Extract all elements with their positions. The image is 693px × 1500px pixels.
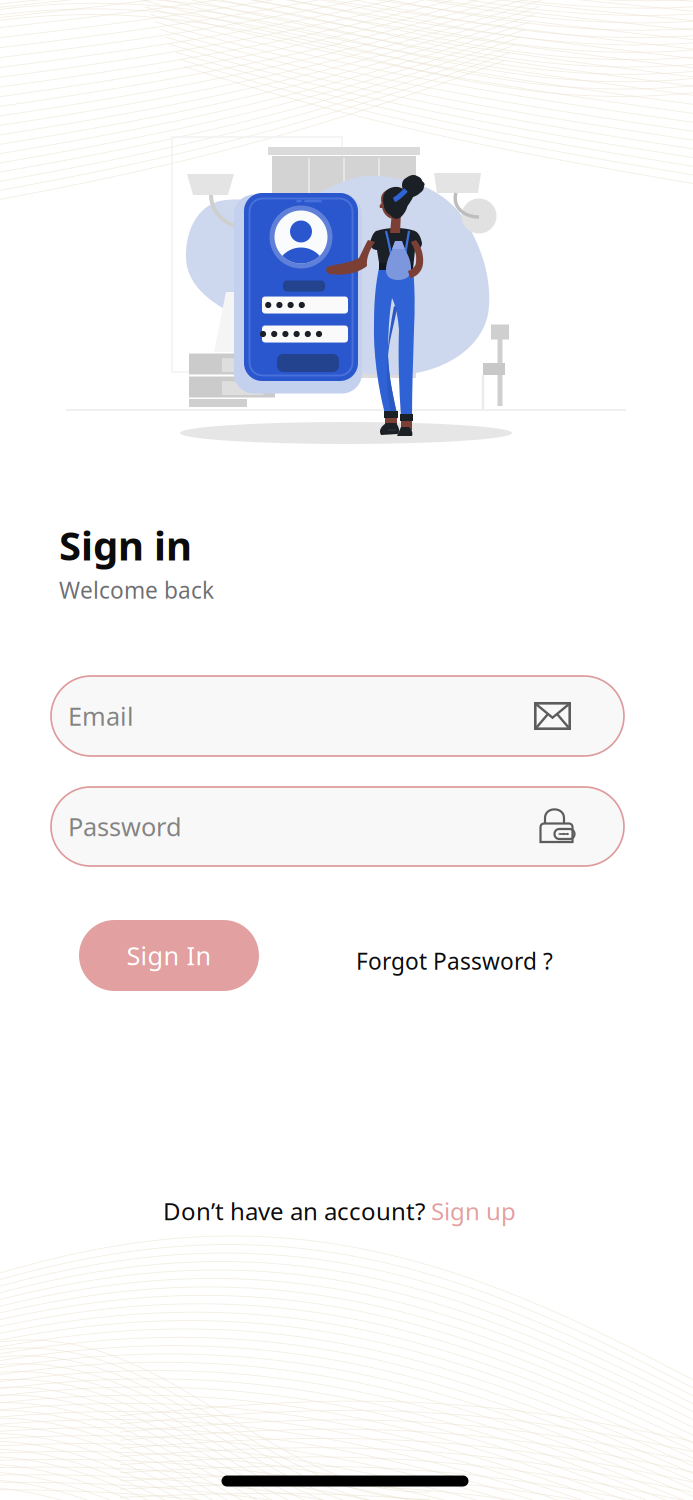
staticText: Sign up: [431, 1195, 516, 1227]
staticText: Sign In: [126, 939, 211, 972]
button[interactable]: Password: [51, 787, 624, 866]
staticText: Welcome back: [59, 575, 214, 605]
staticText: Email: [68, 699, 134, 733]
button[interactable]: Email: [51, 676, 624, 756]
button[interactable]: Sign up: [431, 1195, 516, 1227]
staticText: Sign in: [59, 518, 192, 571]
button[interactable]: Forgot Password ?: [356, 939, 616, 983]
button[interactable]: Sign In: [79, 920, 259, 991]
staticText: Password: [68, 810, 182, 843]
staticText: Forgot Password ?: [356, 946, 553, 976]
staticText: Don’t have an account?: [163, 1195, 431, 1227]
